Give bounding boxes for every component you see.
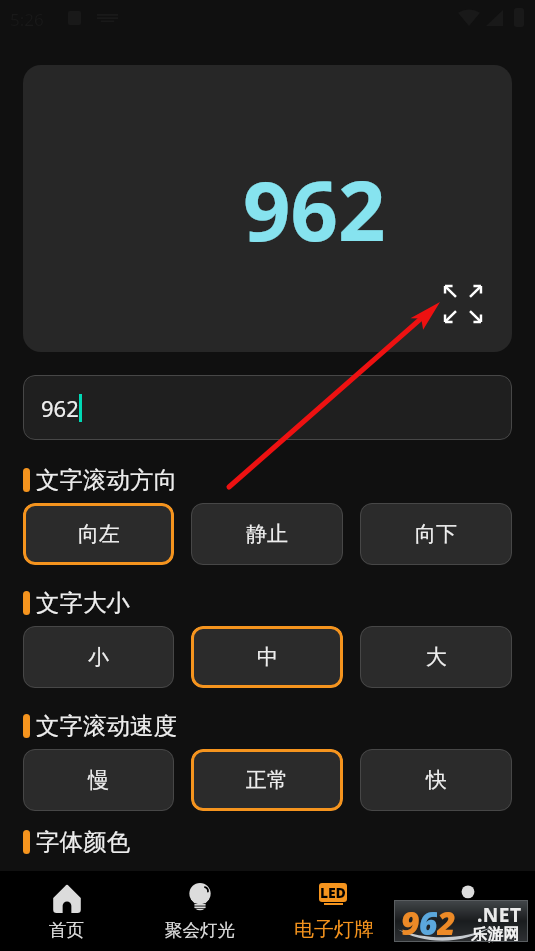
- button[interactable]: 快: [360, 749, 512, 811]
- staticText: 小: [88, 644, 109, 670]
- staticText: 大: [426, 644, 447, 670]
- button[interactable]: 慢: [23, 749, 174, 811]
- staticText: 6: [419, 901, 437, 943]
- button[interactable]: 向左: [23, 503, 174, 565]
- button[interactable]: Fullscreen: [441, 282, 485, 326]
- staticText: 向下: [415, 521, 457, 547]
- button[interactable]: 向下: [360, 503, 512, 565]
- button[interactable]: 首页: [0, 871, 133, 951]
- staticText: 首页: [49, 919, 84, 941]
- staticText: 正常: [246, 767, 288, 793]
- staticText: 慢: [88, 767, 109, 793]
- button[interactable]: 正常: [191, 749, 343, 811]
- button[interactable]: 大: [360, 626, 512, 688]
- button[interactable]: 静止: [191, 503, 343, 565]
- button[interactable]: LED: [267, 871, 401, 951]
- staticText: 电子灯牌: [294, 917, 374, 942]
- button[interactable]: 小: [23, 626, 174, 688]
- staticText: .NET: [477, 902, 522, 928]
- staticText: 2: [437, 901, 455, 943]
- button[interactable]: 我的: [401, 871, 535, 951]
- staticText: 静止: [246, 521, 288, 547]
- staticText: 聚会灯光: [165, 919, 235, 941]
- button[interactable]: 962: [23, 375, 512, 440]
- staticText: 文字滚动速度: [36, 711, 177, 737]
- button[interactable]: 中: [191, 626, 343, 688]
- staticText: 字体颜色: [36, 827, 130, 853]
- staticText: 962: [243, 152, 386, 265]
- staticText: 我的: [451, 919, 486, 941]
- button[interactable]: 聚会灯光: [133, 871, 267, 951]
- staticText: 快: [426, 767, 447, 793]
- staticText: LED: [320, 883, 346, 902]
- staticText: 中: [257, 644, 278, 670]
- staticText: 文字大小: [36, 588, 130, 614]
- staticText: 文字滚动方向: [36, 465, 177, 491]
- staticText: 乐游网: [471, 925, 519, 945]
- staticText: 向左: [78, 521, 120, 547]
- staticText: 9: [401, 901, 419, 943]
- staticText: 962: [41, 393, 79, 423]
